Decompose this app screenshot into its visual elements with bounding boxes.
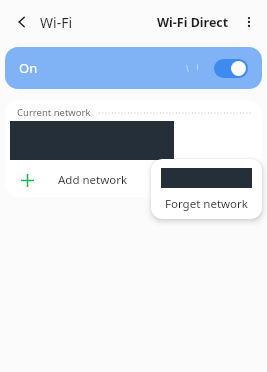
staticText: Wi-Fi	[40, 13, 73, 32]
staticText: On	[19, 59, 38, 77]
staticText: Wi-Fi Direct	[157, 14, 229, 31]
button[interactable]: On	[5, 47, 262, 89]
button[interactable]: Wi-Fi Direct	[153, 10, 233, 35]
button[interactable]: Wi-Fi on	[214, 59, 248, 78]
button[interactable]: Forget network	[151, 188, 262, 219]
button[interactable]: Connected network	[10, 121, 174, 160]
staticText: Add network	[58, 172, 128, 188]
button[interactable]: Back	[8, 8, 36, 36]
staticText: Current network	[17, 106, 91, 119]
button[interactable]: Add network	[5, 163, 262, 197]
staticText: Forget network	[165, 196, 248, 212]
button[interactable]: More options	[237, 10, 261, 34]
